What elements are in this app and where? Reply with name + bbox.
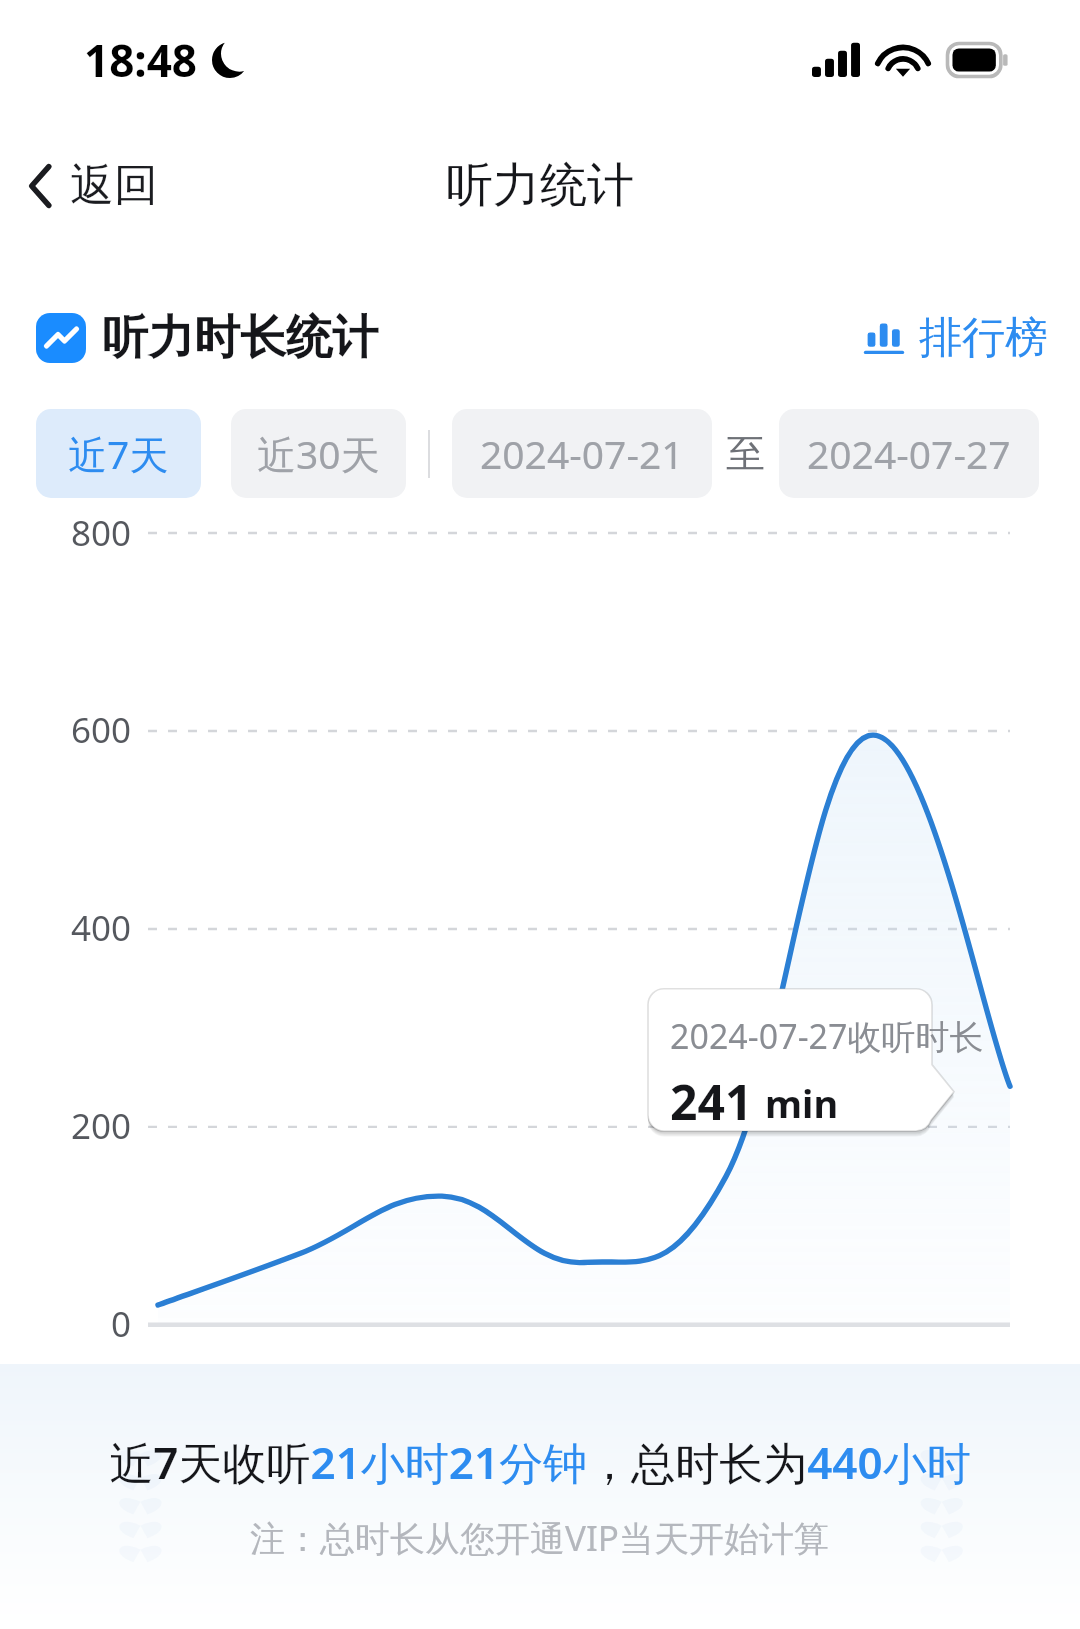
- staticText: 至: [726, 429, 765, 478]
- staticText: 周四: [680, 1364, 760, 1444]
- staticText: 周三: [538, 1364, 618, 1444]
- staticText: 241: [670, 1069, 753, 1134]
- staticText: 周二: [396, 1364, 476, 1444]
- button[interactable]: 排行榜: [857, 305, 1054, 371]
- staticText: 400: [71, 904, 132, 952]
- staticText: 600: [71, 706, 132, 754]
- staticText: 近7天收听21小时21分钟，总时长为440小时: [109, 1432, 971, 1492]
- staticText: 2024-07-27: [807, 427, 1011, 480]
- staticText: 周日: [112, 1364, 192, 1444]
- staticText: 0: [111, 1300, 132, 1348]
- staticText: 200: [71, 1102, 132, 1150]
- staticText: 近7天: [68, 427, 169, 480]
- staticText: 近30天: [257, 427, 380, 480]
- staticText: 800: [71, 509, 132, 557]
- staticText: 18:48: [84, 30, 198, 90]
- staticText: 听力统计: [446, 156, 634, 215]
- staticText: 听力时长统计: [102, 309, 378, 367]
- button[interactable]: 返回: [16, 148, 170, 223]
- staticText: 2024-07-21: [480, 427, 684, 480]
- button[interactable]: 2024-07-21: [452, 409, 712, 498]
- button[interactable]: 2024-07-27: [779, 409, 1039, 498]
- button[interactable]: 近30天: [231, 409, 406, 498]
- staticText: 2024-07-27收听时长: [670, 1013, 984, 1059]
- staticText: 返回: [70, 158, 158, 213]
- staticText: min: [765, 1077, 839, 1129]
- button[interactable]: 近7天: [36, 409, 201, 498]
- staticText: 排行榜: [919, 311, 1048, 365]
- staticText: 注：总时长从您开通VIP当天开始计算: [250, 1514, 830, 1562]
